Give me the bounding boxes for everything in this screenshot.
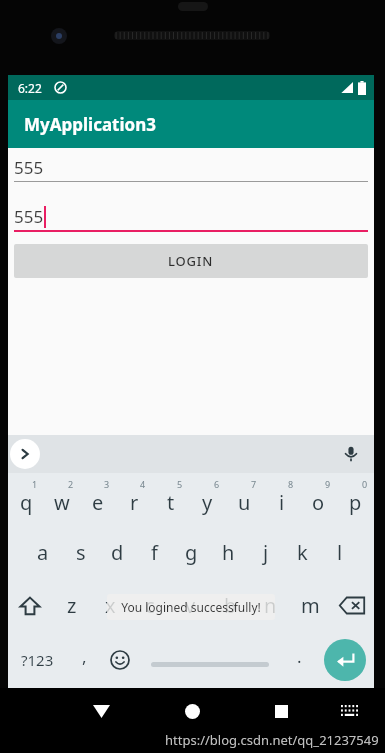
staticText: r [130, 489, 139, 516]
button[interactable]: n [250, 579, 290, 632]
staticText: 6 [214, 478, 220, 490]
staticText: , [82, 645, 87, 668]
button[interactable]: c [130, 579, 170, 632]
staticText: e [92, 489, 104, 516]
button[interactable]: r [116, 473, 152, 526]
staticText: x [105, 592, 116, 619]
staticText: q [20, 489, 33, 516]
button[interactable]: . [282, 632, 316, 688]
button[interactable]: i [263, 473, 300, 526]
button[interactable]: o [300, 473, 337, 526]
staticText: 555 [14, 156, 44, 179]
staticText: w [54, 489, 70, 516]
staticText: t [167, 489, 175, 516]
button[interactable]: Switch keyboard [335, 696, 363, 724]
staticText: 2 [68, 478, 74, 490]
staticText: . [297, 645, 302, 668]
staticText: You logined successfully! [121, 599, 261, 615]
button[interactable]: f [136, 526, 173, 579]
button[interactable]: Enter [316, 632, 374, 688]
button[interactable]: m [290, 579, 330, 632]
staticText: 3 [104, 478, 110, 490]
staticText: 9 [325, 478, 331, 490]
button[interactable]: j [247, 526, 284, 579]
staticText: d [111, 539, 124, 566]
button[interactable]: Emoji [102, 632, 138, 688]
button[interactable]: z [52, 579, 91, 632]
button[interactable]: Shift [8, 579, 52, 632]
staticText: s [76, 539, 86, 566]
button[interactable]: LOGIN [14, 244, 368, 278]
button[interactable]: ?123 [8, 632, 66, 688]
staticText: MyApplication3 [24, 113, 156, 136]
staticText: m [301, 592, 320, 619]
staticText: n [264, 592, 277, 619]
button[interactable]: u [226, 473, 263, 526]
button[interactable]: d [99, 526, 136, 579]
button[interactable]: e [80, 473, 116, 526]
button[interactable]: s [62, 526, 99, 579]
button[interactable]: k [284, 526, 321, 579]
button[interactable]: Back [82, 692, 120, 730]
staticText: 8 [288, 478, 294, 490]
button[interactable]: t [152, 473, 189, 526]
button[interactable]: , [66, 632, 102, 688]
staticText: j [263, 539, 269, 566]
staticText: 6:22 [18, 80, 42, 96]
staticText: https://blog.csdn.net/qq_21237549 [165, 731, 379, 749]
staticText: ?123 [21, 650, 54, 670]
staticText: l [337, 539, 343, 566]
staticText: o [312, 489, 325, 516]
button[interactable]: q [8, 473, 44, 526]
staticText: c [145, 592, 155, 619]
staticText: LOGIN [168, 252, 214, 270]
button[interactable]: l [321, 526, 358, 579]
staticText: h [222, 539, 235, 566]
staticText: v [185, 592, 196, 619]
staticText: 0 [362, 478, 368, 490]
staticText: y [202, 489, 213, 516]
button[interactable]: w [44, 473, 80, 526]
button[interactable]: p [337, 473, 374, 526]
staticText: b [224, 592, 237, 619]
staticText: 5 [177, 478, 183, 490]
button[interactable]: Expand suggestions [10, 439, 40, 469]
button[interactable]: v [170, 579, 210, 632]
staticText: g [185, 539, 198, 566]
staticText: k [297, 539, 308, 566]
staticText: i [279, 489, 285, 516]
button[interactable]: y [189, 473, 226, 526]
button[interactable]: Home [173, 692, 211, 730]
staticText: a [37, 539, 49, 566]
staticText: 555 [14, 205, 44, 228]
staticText: 1 [32, 478, 38, 490]
button[interactable]: Backspace [330, 579, 374, 632]
staticText: 4 [140, 478, 146, 490]
button[interactable]: Recent apps [262, 692, 300, 730]
button[interactable]: h [210, 526, 247, 579]
button[interactable]: b [210, 579, 250, 632]
button[interactable]: Space [138, 632, 282, 688]
staticText: z [67, 592, 77, 619]
button[interactable]: a [24, 526, 62, 579]
staticText: p [349, 489, 362, 516]
button[interactable]: x [91, 579, 130, 632]
staticText: f [151, 539, 158, 566]
button[interactable]: Voice input [338, 441, 364, 467]
staticText: 7 [251, 478, 257, 490]
staticText: u [238, 489, 251, 516]
button[interactable]: g [173, 526, 210, 579]
